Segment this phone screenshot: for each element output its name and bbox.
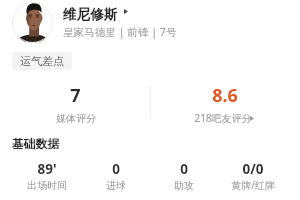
- staticText: 89': [37, 160, 57, 178]
- button[interactable]: 运气差点: [12, 52, 72, 70]
- staticText: 黄牌/红牌: [231, 178, 275, 192]
- other: Open player page: [124, 9, 128, 14]
- button[interactable]: [82, 158, 150, 194]
- staticText: 7: [70, 83, 81, 108]
- staticText: 0: [180, 160, 188, 178]
- staticText: 助攻: [174, 179, 194, 192]
- staticText: 基础数据: [12, 137, 60, 152]
- staticText: 媒体评分: [56, 112, 96, 125]
- staticText: 皇家马德里 | 前锋 | 7号: [63, 25, 177, 39]
- button[interactable]: 维尼修斯 player profile: [60, 2, 130, 42]
- staticText: 进球: [106, 179, 126, 192]
- button[interactable]: [150, 158, 218, 194]
- staticText: 0: [112, 160, 120, 178]
- staticText: 0/0: [242, 160, 264, 178]
- button[interactable]: [150, 80, 300, 126]
- button[interactable]: [0, 80, 150, 126]
- staticText: 运气差点: [20, 54, 64, 68]
- button[interactable]: [13, 158, 81, 194]
- staticText: 8.6: [212, 83, 238, 108]
- button[interactable]: Player photo: [12, 2, 53, 43]
- staticText: 出场时间: [27, 179, 67, 192]
- staticText: 218吧友评分: [194, 111, 252, 125]
- staticText: 维尼修斯: [63, 6, 118, 23]
- button[interactable]: [219, 158, 287, 194]
- other: Open fan ratings: [250, 116, 254, 121]
